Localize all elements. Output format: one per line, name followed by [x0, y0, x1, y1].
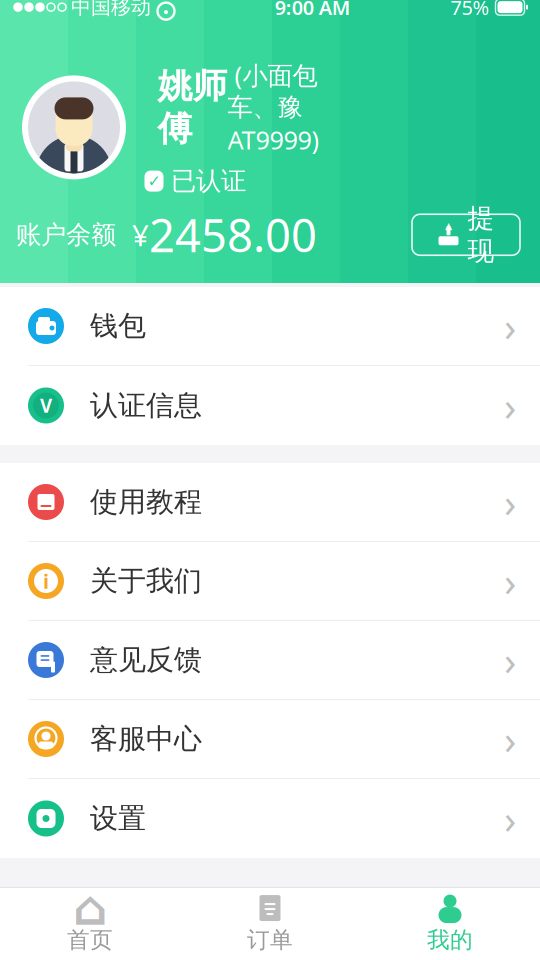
staticText: 9:00 AM [275, 0, 351, 20]
button[interactable]: i [0, 542, 540, 621]
button[interactable]: ▲ [412, 214, 520, 255]
staticText: 提现 [467, 202, 494, 267]
staticText: › [504, 712, 516, 765]
staticText: 认证信息 [90, 388, 202, 423]
staticText: 75% [450, 0, 489, 20]
staticText: 意见反馈 [90, 643, 202, 677]
staticText: 关于我们 [90, 564, 202, 598]
staticText: › [504, 299, 516, 352]
staticText: 姚师傅 [157, 65, 227, 150]
staticText: ✓ [147, 172, 160, 190]
staticText: 我的 [427, 926, 473, 954]
staticText: 客服中心 [90, 722, 202, 756]
staticText: › [504, 792, 516, 845]
staticText: › [504, 379, 516, 432]
button[interactable]: 使用教程 [0, 463, 540, 542]
staticText: 设置 [90, 801, 146, 836]
staticText: 账户余额 [16, 219, 116, 250]
staticText: ¥ [116, 215, 149, 254]
staticText: V [40, 393, 52, 418]
button[interactable]: V [0, 366, 540, 445]
staticText: › [504, 633, 516, 686]
button[interactable]: 设置 [0, 779, 540, 858]
staticText: 使用教程 [90, 485, 202, 519]
staticText: 2458.00 [149, 205, 317, 265]
button[interactable]: 我的 [360, 888, 540, 960]
staticText: 首页 [67, 926, 113, 954]
staticText: i [43, 568, 49, 594]
staticText: ▲ [445, 220, 452, 231]
staticText: 已认证 [171, 165, 246, 197]
staticText: 中国移动 [71, 0, 151, 19]
button[interactable]: ⌂ [0, 888, 180, 960]
staticText: 钱包 [90, 309, 146, 343]
staticText: (小面包车、豫 AT9999) [227, 58, 319, 156]
staticText: › [504, 554, 516, 607]
staticText: ⌂ [73, 881, 107, 935]
button[interactable]: 钱包 [0, 287, 540, 366]
button[interactable]: 客服中心 [0, 700, 540, 779]
staticText: 订单 [247, 926, 293, 954]
button[interactable]: 订单 [180, 888, 360, 960]
staticText: › [504, 475, 516, 528]
button[interactable]: 意见反馈 [0, 621, 540, 700]
